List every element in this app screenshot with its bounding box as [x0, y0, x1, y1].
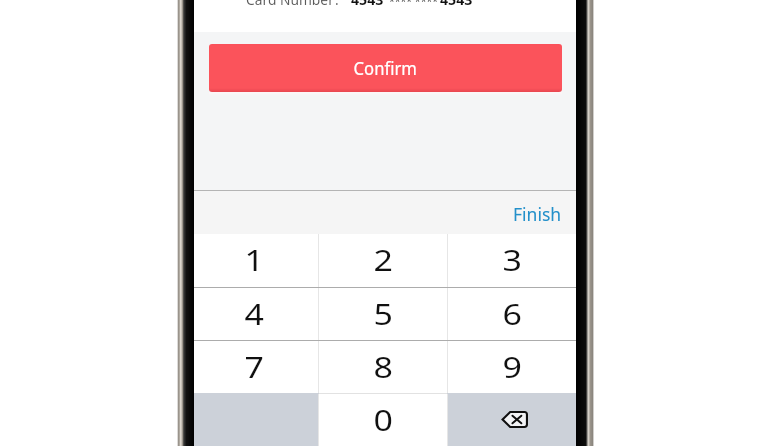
button[interactable]: 5	[319, 288, 447, 340]
button[interactable]: 8	[319, 341, 447, 393]
staticText: 8	[373, 348, 394, 387]
button[interactable]: 7	[190, 341, 318, 393]
staticText: 5	[373, 295, 394, 334]
button[interactable]: 9	[448, 341, 576, 393]
button[interactable]: Blank key	[190, 394, 318, 446]
button[interactable]: Backspace	[448, 394, 576, 446]
staticText: 4543	[351, 0, 384, 9]
button[interactable]: 3	[448, 234, 576, 287]
staticText: 1	[244, 241, 265, 280]
staticText: 6	[502, 295, 523, 334]
staticText: Confirm	[353, 55, 417, 80]
staticText: Finish	[513, 202, 562, 226]
staticText: Card Number	[246, 0, 334, 9]
button[interactable]: Finish	[496, 190, 576, 234]
staticText: :	[335, 0, 339, 9]
staticText: 0	[373, 401, 394, 440]
staticText: 4	[244, 295, 265, 334]
button[interactable]: 4	[190, 288, 318, 340]
staticText: 2	[373, 241, 394, 280]
button[interactable]: 6	[448, 288, 576, 340]
button[interactable]: 2	[319, 234, 447, 287]
button[interactable]: 0	[319, 394, 447, 446]
button[interactable]: Confirm	[209, 44, 562, 92]
staticText: **** ****	[389, 0, 439, 8]
button[interactable]: 1	[190, 234, 318, 287]
staticText: 4543	[440, 0, 473, 9]
staticText: 9	[502, 348, 523, 387]
staticText: 3	[502, 241, 523, 280]
staticText: 7	[244, 348, 265, 387]
